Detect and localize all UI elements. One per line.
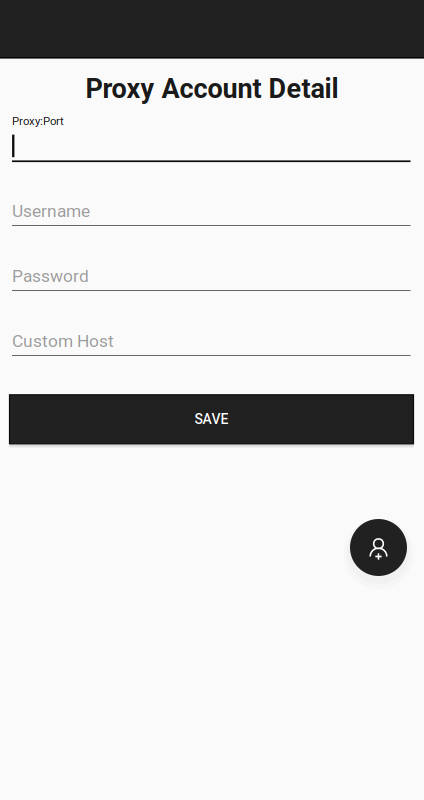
button[interactable]: SAVE: [9, 395, 413, 444]
staticText: Proxy Account Detail: [85, 73, 338, 105]
staticText: Proxy:Port: [12, 114, 64, 128]
button[interactable]: Password: [12, 266, 410, 298]
staticText: Custom Host: [12, 331, 114, 351]
button[interactable]: Proxy:Port: [12, 114, 410, 162]
button[interactable]: Add proxy account: [350, 519, 407, 576]
staticText: SAVE: [194, 411, 228, 427]
button[interactable]: Username: [12, 201, 410, 233]
button[interactable]: Custom Host: [12, 331, 410, 363]
staticText: Username: [12, 201, 90, 221]
staticText: Password: [12, 266, 89, 286]
